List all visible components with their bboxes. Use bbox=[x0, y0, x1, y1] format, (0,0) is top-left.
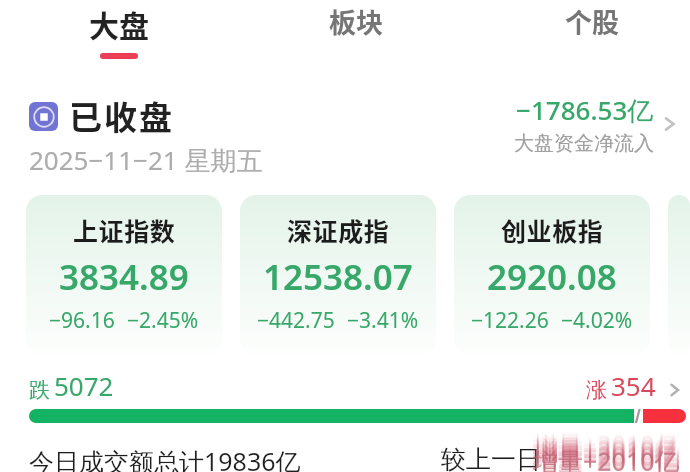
staticText: 增量+2010亿 bbox=[533, 430, 680, 464]
staticText: 5072 bbox=[54, 368, 114, 403]
staticText: 增量+2010亿 bbox=[533, 438, 680, 472]
staticText: 增量+2010亿 bbox=[533, 431, 680, 465]
staticText: 增量+2010亿 bbox=[533, 444, 680, 472]
button[interactable]: Market closed bbox=[29, 92, 173, 140]
staticText: −3.41% bbox=[347, 306, 419, 335]
button[interactable]: 创业板指 bbox=[454, 195, 650, 355]
other: Market closed bbox=[29, 102, 58, 131]
staticText: 大盘 bbox=[89, 2, 149, 45]
staticText: 增量+2010亿 bbox=[533, 440, 680, 472]
staticText: −122.26 bbox=[471, 306, 549, 335]
button[interactable]: 板块 bbox=[281, 0, 431, 62]
staticText: 12538.07 bbox=[263, 253, 413, 301]
staticText: 增量+2010亿 bbox=[533, 425, 680, 459]
staticText: 增量+2010亿 bbox=[533, 444, 680, 472]
staticText: 增量+2010亿 bbox=[533, 437, 680, 471]
staticText: 上证指数 bbox=[73, 212, 176, 248]
staticText: 大盘资金净流入 bbox=[514, 131, 654, 156]
staticText: 增量+2010亿 bbox=[533, 428, 680, 462]
staticText: 2920.08 bbox=[487, 253, 617, 301]
staticText: 354 bbox=[611, 368, 656, 403]
staticText: 涨 bbox=[586, 377, 607, 403]
staticText: −4.02% bbox=[561, 306, 633, 335]
staticText: −442.75 bbox=[257, 306, 335, 335]
staticText: 今日成交额总计19836亿 bbox=[29, 444, 301, 472]
staticText: 增量+2010亿 bbox=[533, 426, 680, 460]
staticText: 已收盘 bbox=[68, 92, 173, 140]
staticText: 增量+2010亿 bbox=[533, 427, 680, 461]
staticText: 创业板指 bbox=[501, 212, 604, 248]
staticText: 增量+2010亿 bbox=[533, 432, 680, 466]
staticText: 增量+2010亿 bbox=[533, 433, 680, 467]
button[interactable]: 跌 bbox=[0, 368, 690, 472]
staticText: 板块 bbox=[329, 2, 383, 41]
button[interactable]: 个股 bbox=[517, 0, 667, 62]
button[interactable]: 上证指数 bbox=[26, 195, 222, 355]
button[interactable]: More capital flow bbox=[662, 110, 678, 138]
staticText: 增量+2010亿 bbox=[533, 436, 680, 470]
staticText: −2.45% bbox=[127, 306, 199, 335]
staticText: 增量+2010亿 bbox=[533, 442, 680, 472]
other: More market breadth bbox=[668, 377, 682, 403]
button[interactable]: 深证成指 bbox=[240, 195, 436, 355]
staticText: 跌 bbox=[29, 377, 50, 403]
staticText: 3834.89 bbox=[59, 253, 189, 301]
staticText: 2025−11−21 星期五 bbox=[29, 142, 263, 178]
staticText: 增量+2010亿 bbox=[533, 443, 680, 472]
button[interactable]: −1786.53亿 bbox=[514, 92, 654, 156]
staticText: 增量+2010亿 bbox=[533, 439, 680, 472]
staticText: 增量+2010亿 bbox=[533, 434, 680, 468]
button[interactable]: 大盘 bbox=[44, 0, 194, 62]
staticText: 个股 bbox=[565, 2, 619, 41]
staticText: −96.16 bbox=[49, 306, 115, 335]
staticText: 较上一日 bbox=[441, 444, 541, 472]
staticText: 深证成指 bbox=[287, 212, 390, 248]
staticText: −1786.53亿 bbox=[516, 92, 654, 128]
